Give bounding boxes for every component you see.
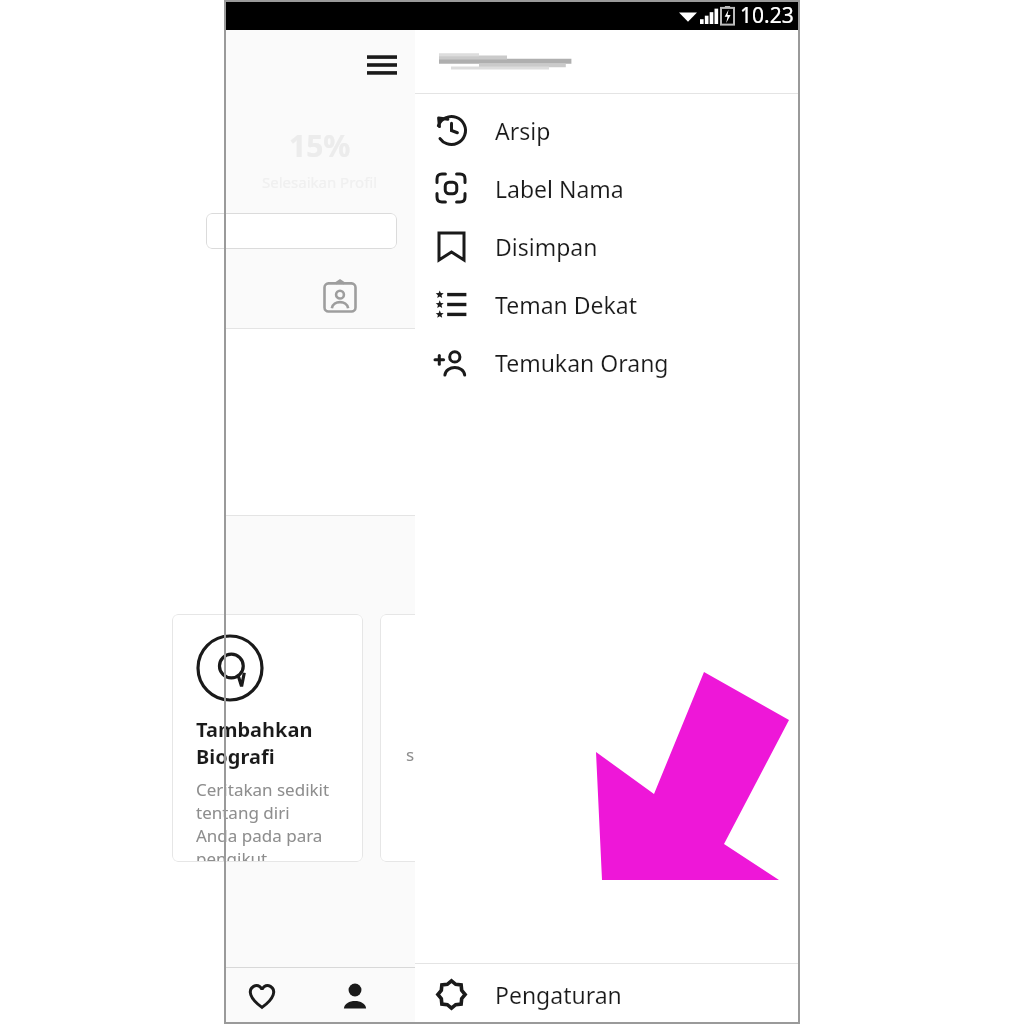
staticText: Tambahkan Biografi	[196, 716, 363, 770]
staticText: Selesaikan Profil	[262, 172, 378, 192]
staticText: Pengaturan	[495, 979, 622, 1010]
button[interactable]: Label Nama	[415, 159, 800, 217]
button[interactable]: Arsip	[415, 101, 800, 159]
staticText: Arsip	[495, 115, 551, 146]
button[interactable]: Pengaturan	[415, 964, 800, 1024]
staticText: Ceritakan sedikit tentang diri Anda pada…	[196, 778, 363, 862]
button[interactable]: Menu	[359, 42, 405, 88]
button[interactable]: Highlight	[323, 279, 357, 313]
staticText: Label Nama	[495, 173, 624, 204]
button[interactable]	[206, 213, 397, 249]
staticText: Temukan Orang	[495, 347, 669, 378]
staticText: s	[406, 743, 415, 766]
staticText: 10.23	[740, 1, 794, 30]
button[interactable]: Activity	[224, 968, 300, 1024]
button[interactable]: Disimpan	[415, 217, 800, 275]
button[interactable]: Tambahkan Biografi	[172, 614, 363, 862]
button[interactable]: Teman Dekat	[415, 275, 800, 333]
button[interactable]: Profile	[300, 968, 410, 1024]
button[interactable]: Temukan Orang	[415, 333, 800, 391]
staticText: Teman Dekat	[495, 289, 638, 320]
staticText: Disimpan	[495, 231, 598, 262]
staticText: 15%	[289, 125, 351, 166]
